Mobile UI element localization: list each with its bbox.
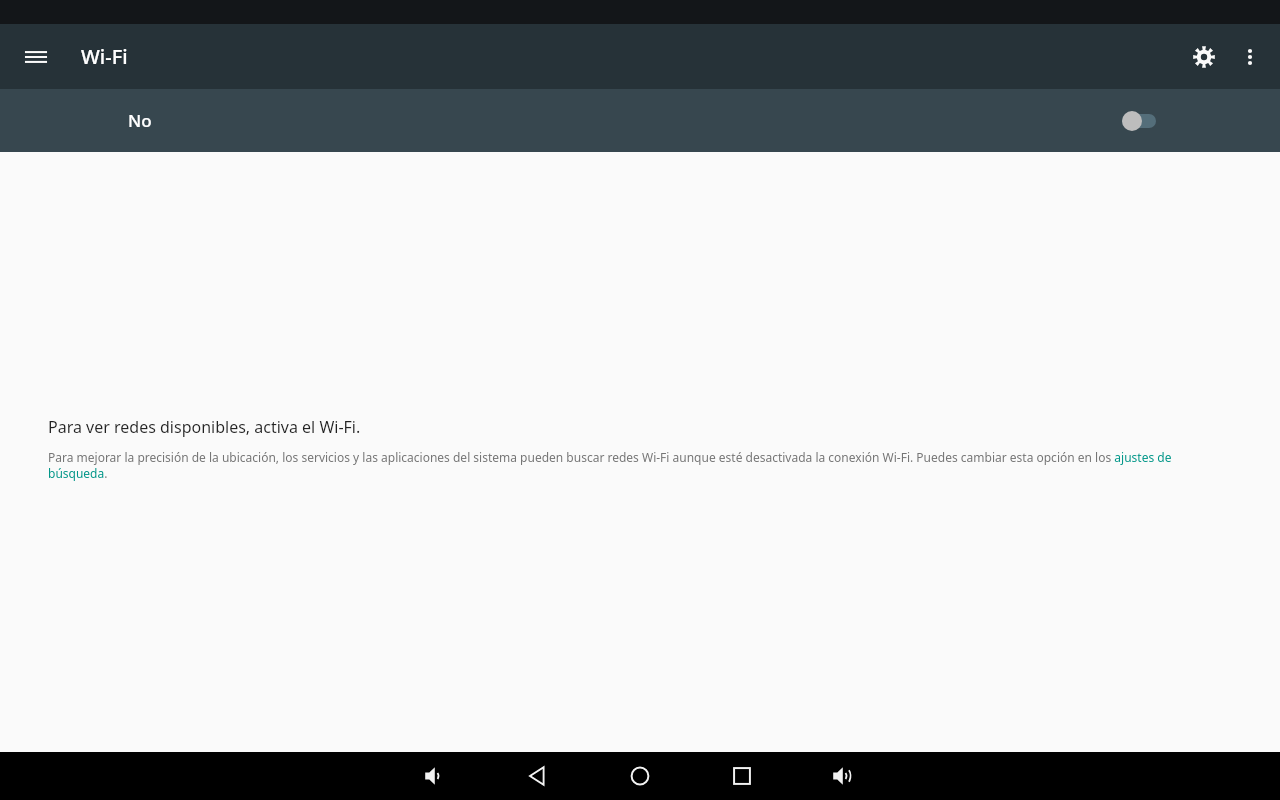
staticText: No [128, 109, 152, 132]
staticText: Para ver redes disponibles, activa el Wi… [48, 416, 361, 438]
button[interactable]: Back [516, 754, 560, 798]
button[interactable]: Volume down [414, 754, 458, 798]
button[interactable]: Recent apps [720, 754, 764, 798]
button[interactable]: Open navigation drawer [12, 33, 60, 81]
button[interactable]: Volume up [822, 754, 866, 798]
button[interactable]: More options [1228, 35, 1272, 79]
button[interactable]: Wi-Fi preferences [1180, 33, 1228, 81]
button[interactable]: Home [618, 754, 662, 798]
staticText: Wi-Fi [81, 43, 128, 70]
button[interactable]: No [0, 89, 1280, 152]
button[interactable]: Para mejorar la precisión de la ubicació… [48, 449, 1232, 481]
